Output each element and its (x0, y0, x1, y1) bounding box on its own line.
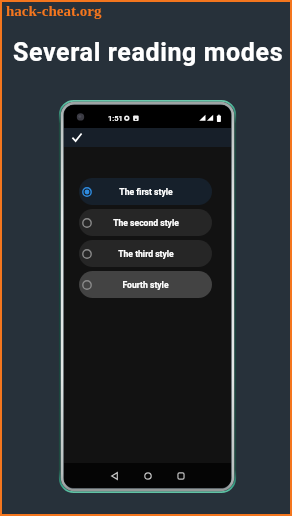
staticText: The first style (119, 187, 173, 197)
staticText: Fourth style (122, 280, 169, 290)
button[interactable]: The first style (79, 178, 212, 205)
button[interactable]: Back (106, 468, 122, 484)
staticText: 1:51 (108, 114, 123, 123)
staticText: The third style (118, 249, 174, 259)
staticText: The second style (113, 218, 179, 228)
button[interactable]: Confirm (67, 128, 86, 147)
staticText: hack-cheat.org (6, 3, 102, 20)
button[interactable]: The third style (79, 240, 212, 267)
button[interactable]: Recent apps (173, 468, 189, 484)
button[interactable]: Home (140, 468, 156, 484)
button[interactable]: The second style (79, 209, 212, 236)
button[interactable]: Fourth style (79, 271, 212, 298)
staticText: Several reading modes (13, 38, 284, 67)
